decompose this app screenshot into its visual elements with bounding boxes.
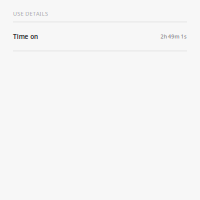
button[interactable]: Time on <box>0 22 200 50</box>
staticText: Time on <box>13 32 38 41</box>
staticText: 2h 49m 1s <box>161 33 187 40</box>
staticText: USE DETAILS <box>13 10 48 17</box>
